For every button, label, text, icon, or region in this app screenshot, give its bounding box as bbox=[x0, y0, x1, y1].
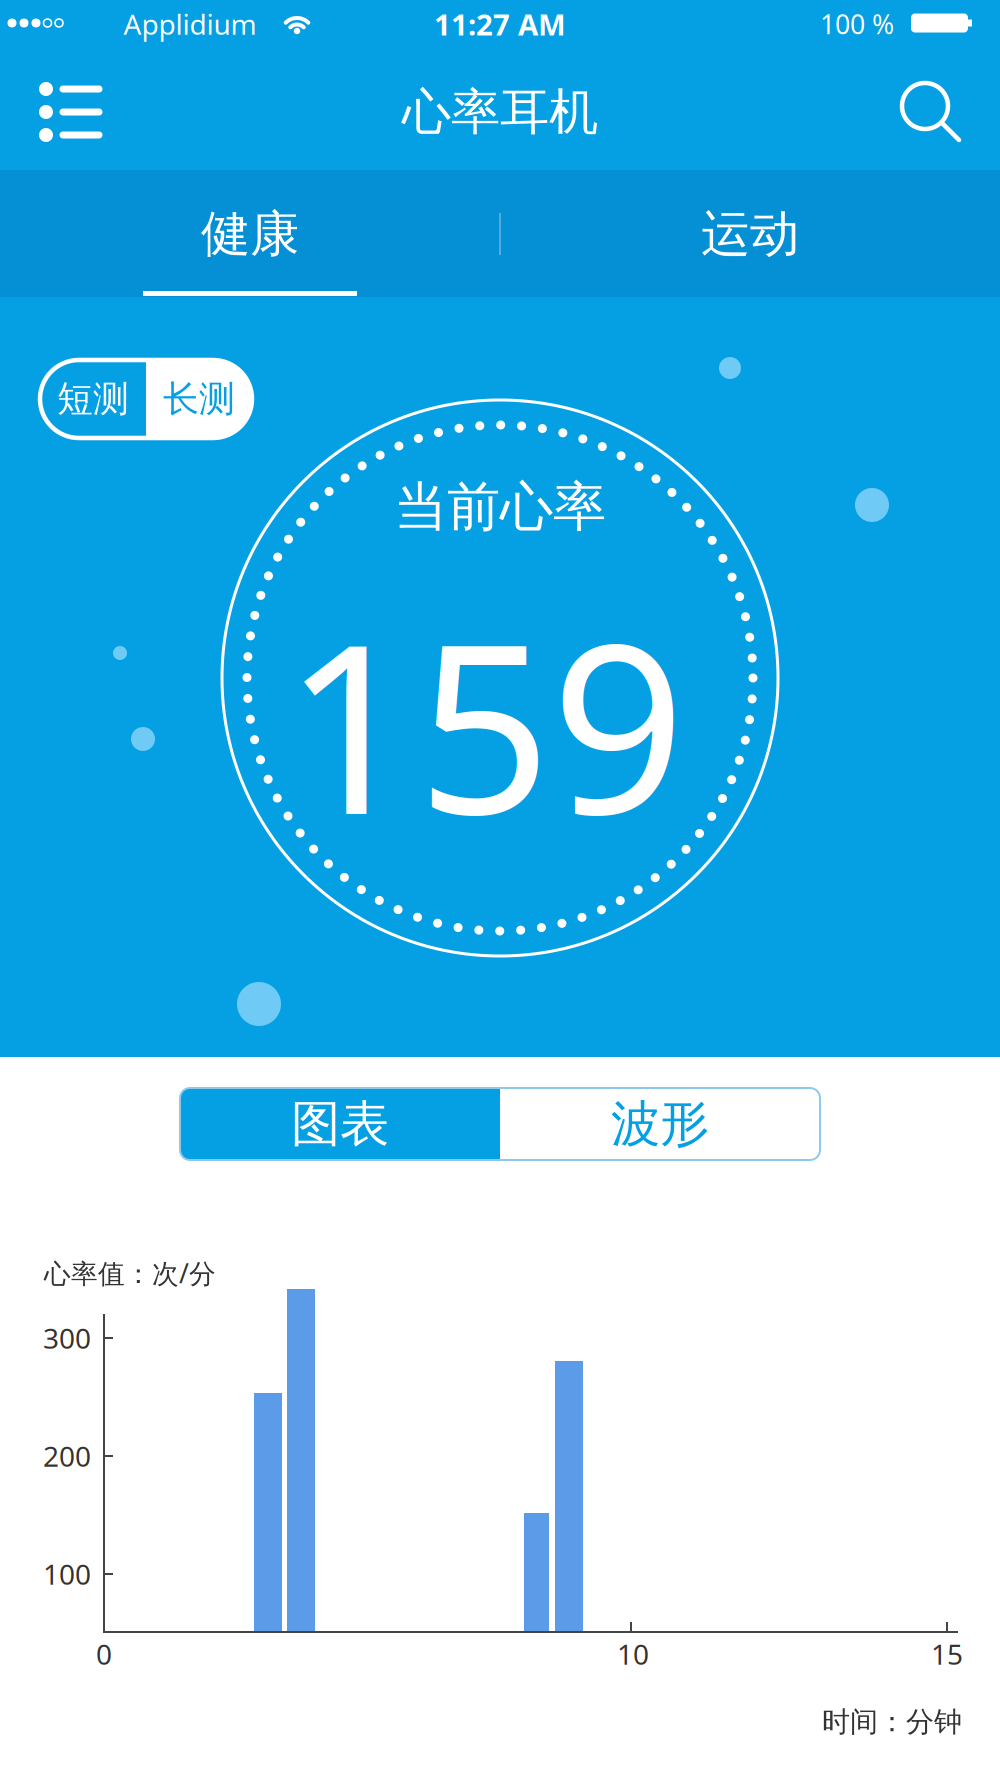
staticText: 心率值：次/分 bbox=[44, 1255, 216, 1291]
staticText: 10 bbox=[617, 1635, 649, 1673]
staticText: 当前心率 bbox=[394, 474, 606, 540]
staticText: 短测 bbox=[57, 377, 129, 421]
staticText: 长测 bbox=[163, 377, 235, 421]
staticText: 100 bbox=[43, 1555, 91, 1593]
staticText: 0 bbox=[96, 1635, 112, 1673]
staticText: 15 bbox=[931, 1635, 963, 1673]
button[interactable]: 运动 bbox=[501, 170, 999, 297]
staticText: 心率耳机 bbox=[402, 82, 598, 142]
staticText: 波形 bbox=[611, 1094, 709, 1154]
staticText: 运动 bbox=[701, 204, 799, 264]
staticText: 11:27 AM bbox=[434, 4, 566, 43]
button[interactable]: Search bbox=[883, 70, 967, 154]
button[interactable]: 图表 波形 bbox=[180, 1088, 820, 1160]
staticText: 图表 bbox=[291, 1094, 389, 1154]
staticText: 159 bbox=[283, 567, 685, 879]
staticText: 时间：分钟 bbox=[822, 1705, 962, 1739]
button[interactable]: 短测 长测 bbox=[40, 360, 252, 438]
staticText: Applidium bbox=[123, 5, 256, 43]
staticText: 100 % bbox=[820, 6, 894, 42]
staticText: 300 bbox=[43, 1319, 91, 1357]
staticText: 健康 bbox=[201, 204, 299, 264]
button[interactable]: 健康 bbox=[1, 170, 499, 297]
button[interactable]: Menu bbox=[21, 72, 111, 152]
staticText: 200 bbox=[43, 1437, 91, 1475]
